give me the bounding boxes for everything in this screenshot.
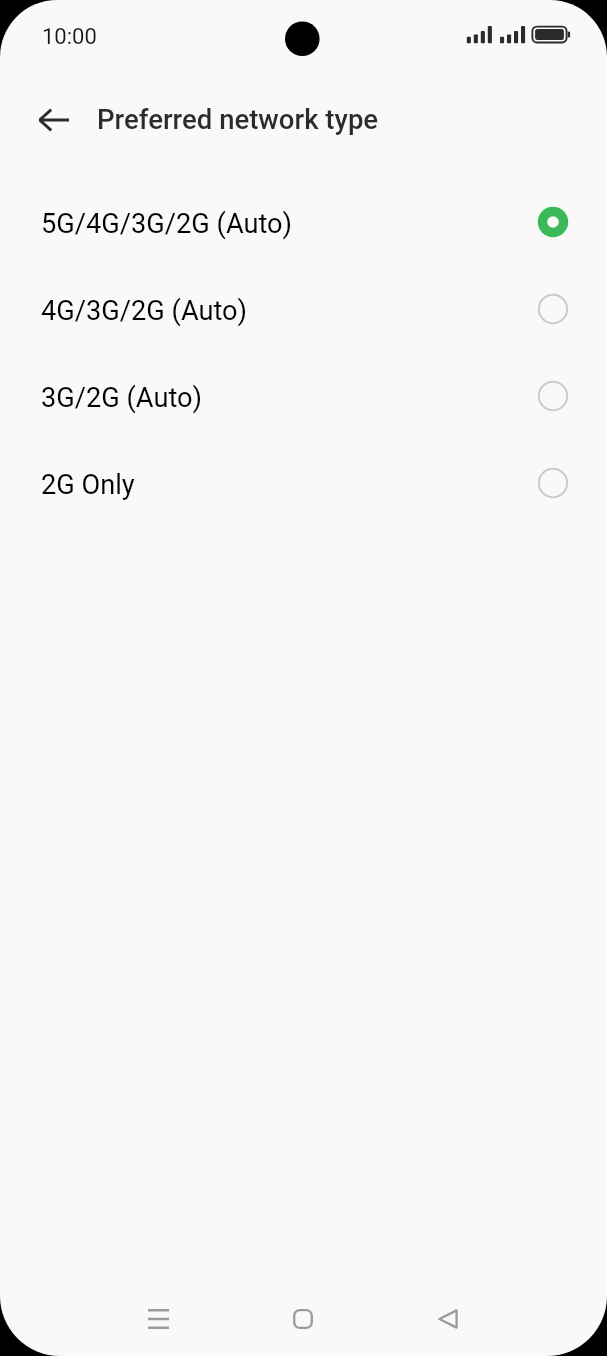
button[interactable]: Home xyxy=(269,1285,337,1353)
staticText: 3G/2G (Auto) xyxy=(41,382,203,414)
staticText: 4G/3G/2G (Auto) xyxy=(41,295,248,327)
staticText: 2G Only xyxy=(41,469,135,501)
button[interactable]: 5G/4G/3G/2G (Auto) xyxy=(0,179,607,266)
staticText: Preferred network type xyxy=(97,103,379,135)
button[interactable]: Recent apps xyxy=(124,1285,192,1353)
button[interactable]: 3G/2G (Auto) xyxy=(0,353,607,440)
staticText: 10:00 xyxy=(42,24,97,50)
button[interactable]: 2G Only xyxy=(0,440,607,527)
staticText: 5G/4G/3G/2G (Auto) xyxy=(41,208,293,240)
button[interactable]: Back xyxy=(25,97,83,143)
button[interactable]: 4G/3G/2G (Auto) xyxy=(0,266,607,353)
button[interactable]: Back xyxy=(414,1285,482,1353)
